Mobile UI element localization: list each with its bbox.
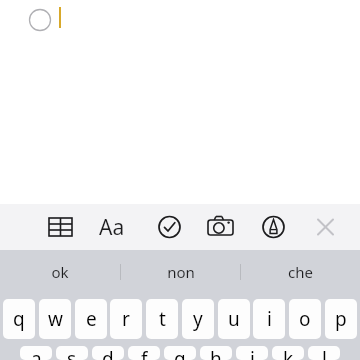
staticText: o: [299, 306, 311, 332]
staticText: j: [250, 346, 255, 360]
button[interactable]: h: [200, 346, 232, 360]
button[interactable]: a: [20, 346, 52, 360]
button[interactable]: ok: [0, 250, 120, 294]
button[interactable]: e: [75, 299, 107, 339]
staticText: ok: [51, 262, 69, 282]
button[interactable]: q: [3, 299, 35, 339]
button[interactable]: k: [272, 346, 304, 360]
button[interactable]: y: [182, 299, 214, 339]
button[interactable]: Checklist item: [24, 4, 56, 36]
button[interactable]: i: [253, 299, 285, 339]
staticText: d: [102, 346, 114, 360]
button[interactable]: w: [39, 299, 71, 339]
button[interactable]: f: [128, 346, 160, 360]
staticText: w: [48, 306, 63, 332]
staticText: y: [193, 306, 203, 332]
staticText: h: [210, 346, 222, 360]
staticText: non: [167, 262, 195, 282]
staticText: e: [86, 306, 97, 332]
staticText: g: [174, 346, 186, 360]
button[interactable]: non: [121, 250, 240, 294]
staticText: che: [288, 262, 313, 282]
staticText: Aa: [99, 213, 125, 242]
button[interactable]: Text format: [94, 204, 130, 250]
button[interactable]: Insert table: [45, 204, 75, 250]
staticText: i: [267, 306, 272, 332]
button[interactable]: Markup: [258, 204, 288, 250]
staticText: a: [31, 346, 42, 360]
staticText: l: [322, 346, 327, 360]
staticText: p: [335, 306, 347, 332]
button[interactable]: g: [164, 346, 196, 360]
button[interactable]: s: [56, 346, 88, 360]
button[interactable]: p: [325, 299, 357, 339]
staticText: s: [67, 346, 77, 360]
button[interactable]: che: [241, 250, 360, 294]
button[interactable]: Checklist: [154, 204, 184, 250]
staticText: k: [283, 346, 294, 360]
button[interactable]: l: [308, 346, 340, 360]
button[interactable]: j: [236, 346, 268, 360]
staticText: t: [159, 306, 166, 332]
button[interactable]: Hide keyboard: [310, 204, 340, 250]
button[interactable]: d: [92, 346, 124, 360]
staticText: f: [141, 346, 148, 360]
button[interactable]: Take photo: [205, 204, 235, 250]
staticText: q: [13, 306, 25, 332]
staticText: u: [228, 306, 240, 332]
staticText: r: [122, 306, 130, 332]
button[interactable]: r: [110, 299, 142, 339]
button[interactable]: u: [218, 299, 250, 339]
button[interactable]: t: [146, 299, 178, 339]
button[interactable]: o: [289, 299, 321, 339]
